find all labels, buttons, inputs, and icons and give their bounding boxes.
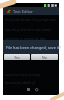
staticText: Yes	[14, 55, 20, 60]
staticText: No	[42, 55, 47, 60]
button[interactable]: saved to local storage	[5, 72, 41, 77]
button[interactable]: Search	[34, 87, 39, 92]
staticText: Text Editor	[13, 9, 33, 14]
button[interactable]: No	[31, 54, 58, 60]
button[interactable]: Menu	[26, 87, 31, 92]
button[interactable]: and then it rained all day	[5, 36, 46, 41]
button[interactable]: Yes	[4, 54, 30, 60]
staticText: File has been changed, save it?	[6, 45, 61, 50]
button[interactable]: document draft v2	[5, 80, 36, 85]
button[interactable]: the quick brown fox jumps over	[5, 17, 57, 22]
button[interactable]: lazy dog near the river bank	[5, 27, 51, 32]
button[interactable]: Text Editor	[3, 7, 59, 15]
